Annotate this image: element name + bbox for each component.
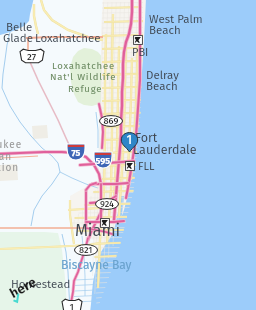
button[interactable]: Map of South Florida <box>0 0 256 310</box>
